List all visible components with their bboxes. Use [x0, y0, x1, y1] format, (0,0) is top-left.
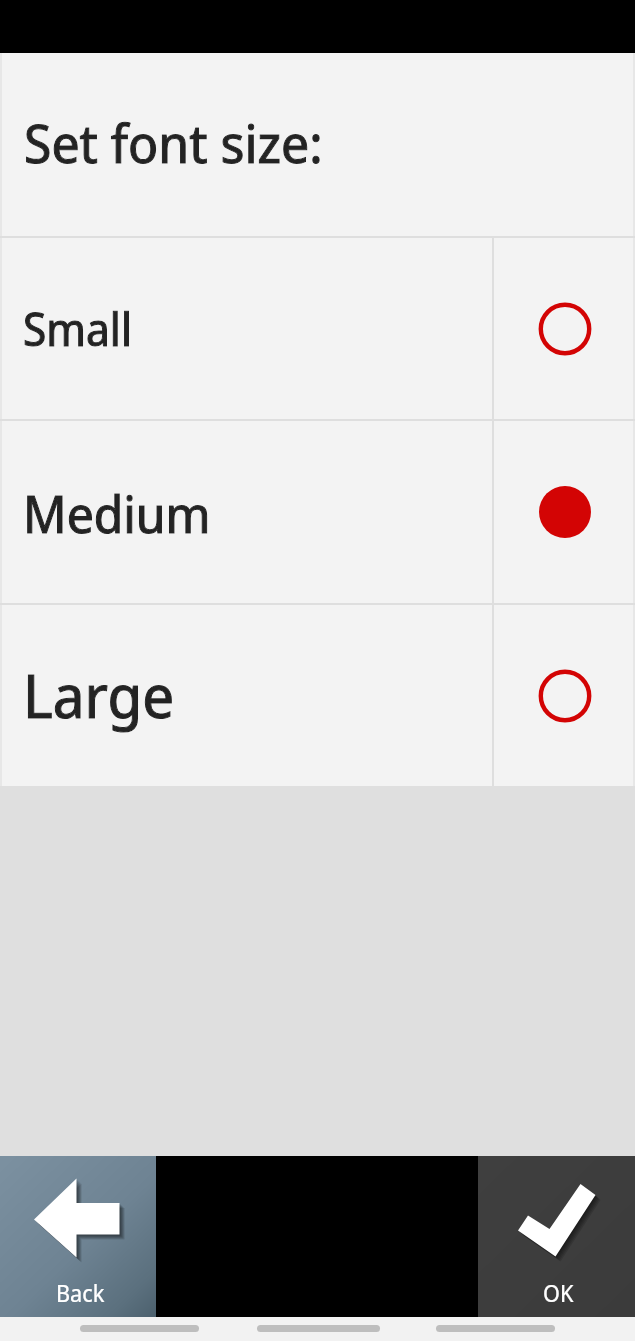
other: Not selected [494, 605, 635, 786]
staticText: Medium [23, 478, 211, 547]
staticText: OK [543, 1277, 574, 1308]
staticText: Set font size: [24, 106, 323, 178]
other: Not selected [494, 238, 635, 419]
staticText: Large [23, 654, 175, 736]
staticText: Back [56, 1277, 105, 1308]
button[interactable]: Large [0, 605, 635, 786]
other: Selected [494, 421, 635, 603]
staticText: Medium [23, 478, 211, 547]
button[interactable]: OK [478, 1156, 635, 1317]
staticText: Small [23, 298, 132, 359]
button[interactable]: Medium [0, 421, 635, 603]
staticText: Large [23, 654, 175, 736]
button[interactable]: Small [0, 238, 635, 419]
staticText: Small [23, 298, 132, 359]
staticText: Set font size: [24, 106, 323, 178]
button[interactable]: Back [0, 1156, 156, 1317]
